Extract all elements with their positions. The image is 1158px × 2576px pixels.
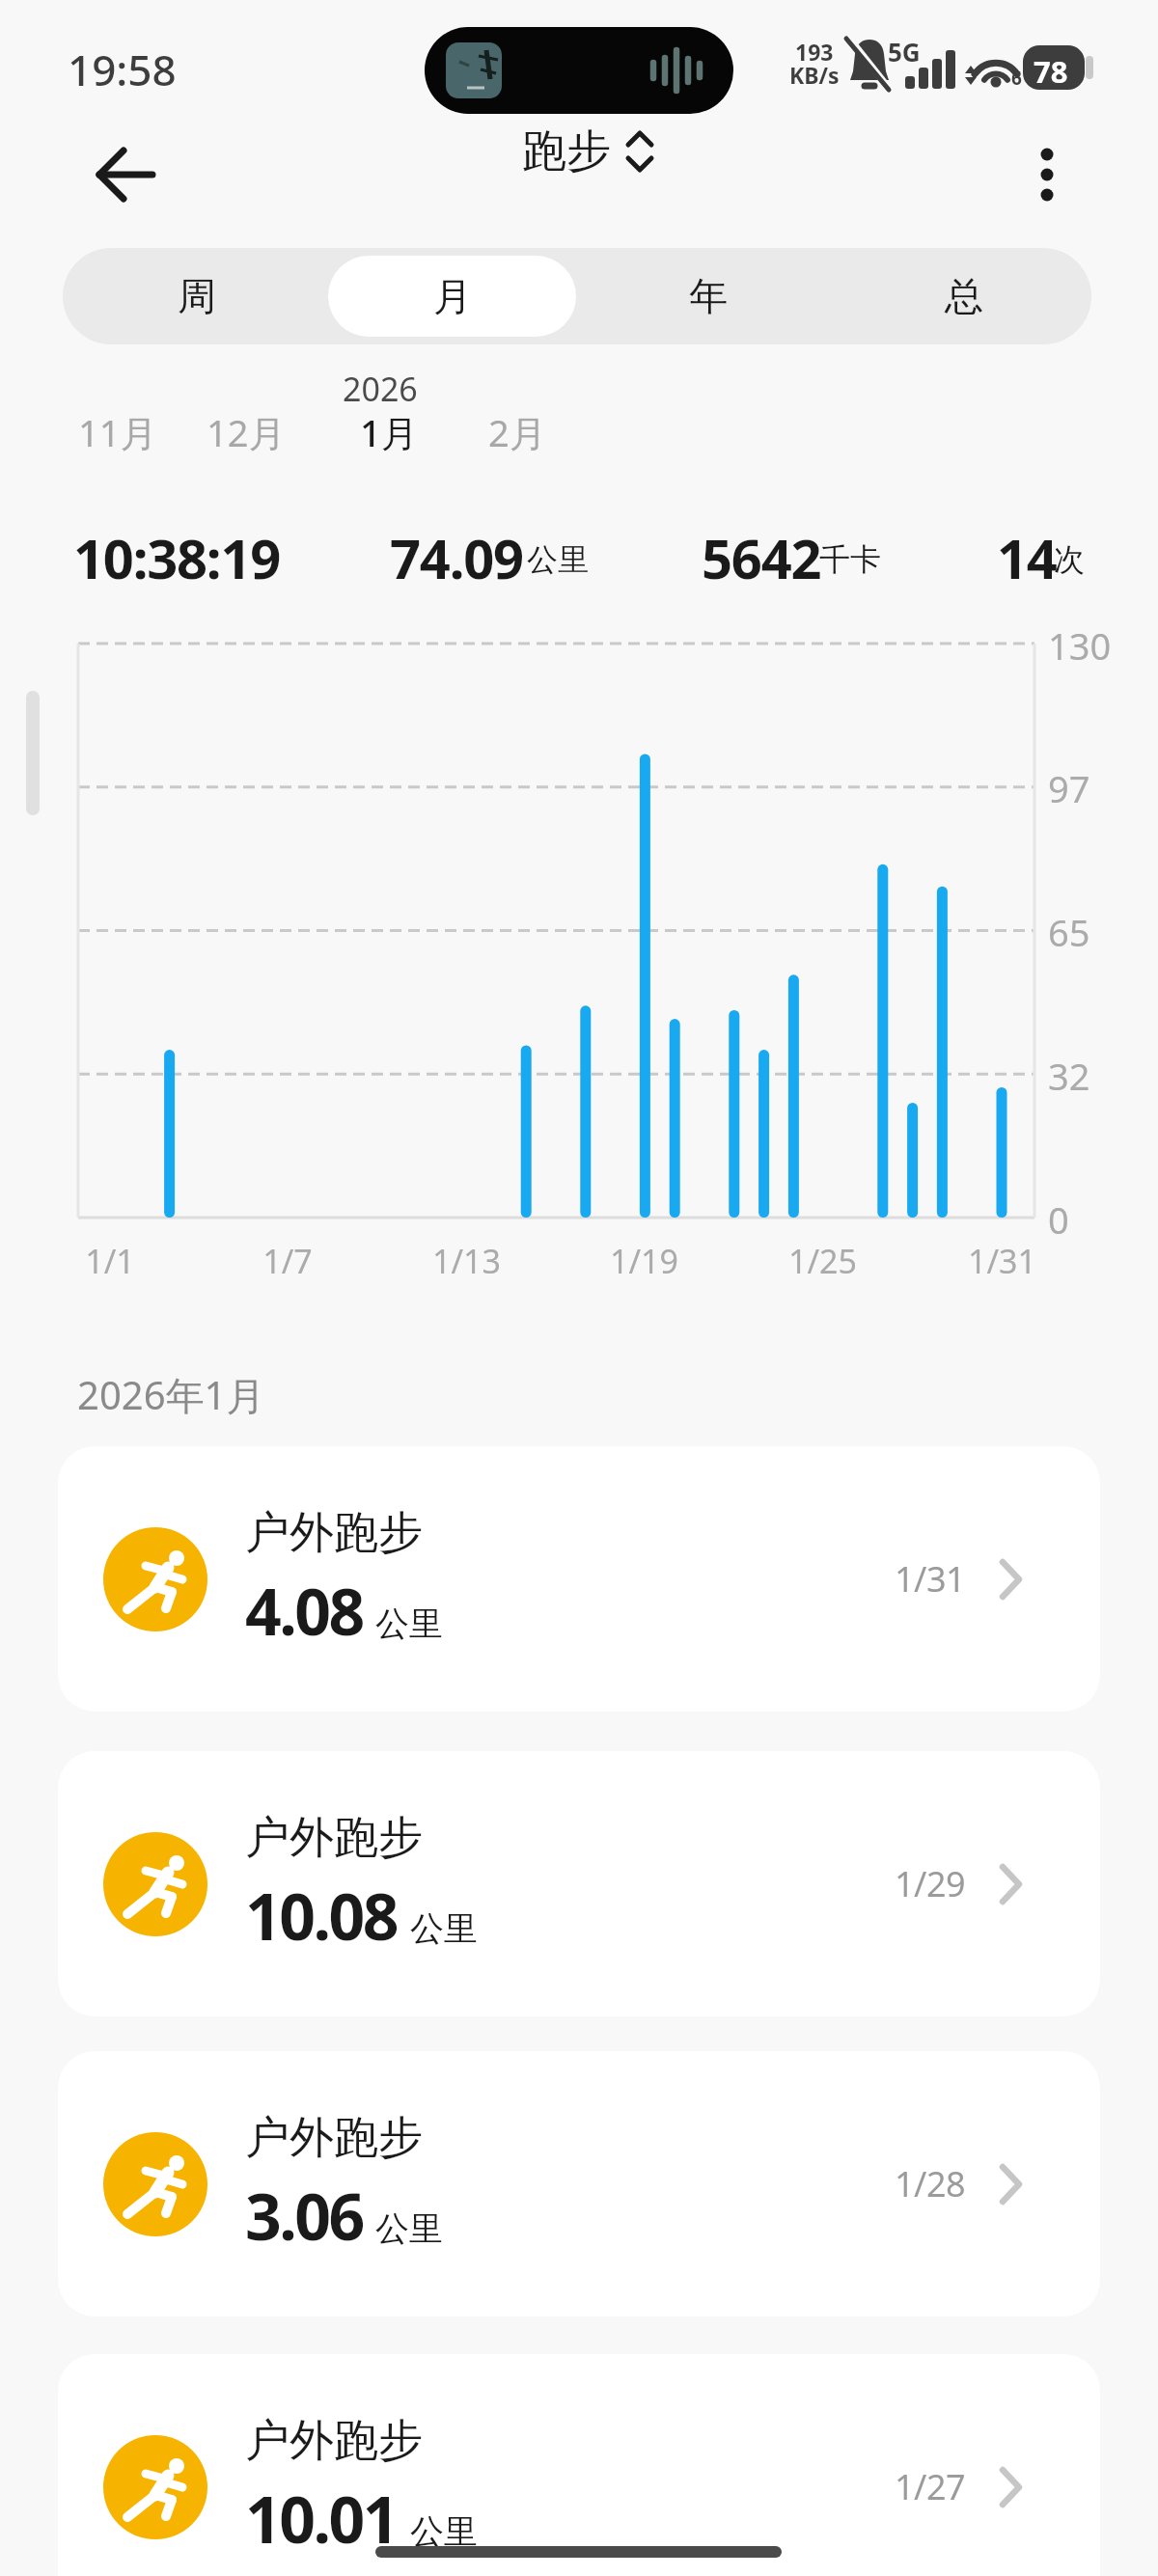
button[interactable]: 12月	[207, 407, 286, 457]
staticText: 2026	[343, 367, 418, 411]
staticText: 公里	[375, 2207, 443, 2250]
staticText: 1/29	[895, 1860, 966, 1907]
staticText: 公里	[375, 1603, 443, 1645]
button[interactable]: 总	[840, 256, 1088, 337]
button[interactable]	[1013, 135, 1081, 212]
button[interactable]: 1月	[360, 407, 418, 457]
staticText: 130	[1048, 620, 1112, 671]
button[interactable]: 周	[73, 256, 320, 337]
staticText: 12月	[207, 407, 286, 457]
staticText: 1/31	[895, 1555, 966, 1603]
staticText: 6	[1011, 66, 1022, 91]
button[interactable]: 户外跑步	[58, 2354, 1100, 2576]
staticText: 户外跑步	[245, 1810, 423, 1866]
staticText: 公里	[410, 1907, 478, 1950]
staticText: 公里	[410, 2510, 478, 2553]
staticText: 11月	[78, 407, 157, 457]
button[interactable]: 户外跑步	[58, 1751, 1100, 2016]
button[interactable]: 年	[584, 256, 832, 337]
staticText: 78	[1034, 51, 1068, 92]
staticText: 5G	[888, 35, 921, 69]
staticText: 1月	[360, 407, 418, 457]
staticText: 14	[997, 521, 1057, 594]
staticText: 193	[795, 37, 834, 67]
staticText: 97	[1048, 763, 1090, 813]
staticText: 74.09	[390, 521, 523, 594]
staticText: 1/1	[85, 1239, 135, 1283]
staticText: 户外跑步	[245, 1505, 423, 1561]
staticText: 32	[1048, 1051, 1090, 1101]
staticText: 1/27	[895, 2463, 966, 2510]
staticText: 总	[945, 272, 983, 320]
staticText: 1/31	[968, 1239, 1036, 1283]
staticText: 1/28	[895, 2160, 966, 2207]
staticText: 1/7	[262, 1239, 313, 1283]
staticText: 10:38:19	[73, 521, 281, 594]
staticText: 65	[1048, 907, 1090, 957]
staticText: 户外跑步	[245, 2413, 423, 2469]
staticText: 千卡	[819, 540, 881, 579]
staticText: KB/s	[789, 60, 840, 90]
staticText: 10.08	[245, 1872, 398, 1959]
button[interactable]: 月	[328, 256, 576, 337]
button[interactable]: 11月	[78, 407, 157, 457]
staticText: 5642	[702, 521, 821, 594]
staticText: 19:58	[68, 41, 177, 98]
button[interactable]	[77, 135, 174, 216]
staticText: 跑步	[522, 123, 611, 179]
staticText: 2月	[488, 407, 546, 457]
button[interactable]: 跑步	[522, 123, 655, 179]
button[interactable]: 户外跑步	[58, 1446, 1100, 1712]
staticText: 次	[1054, 540, 1085, 579]
button[interactable]: 2月	[488, 407, 546, 457]
staticText: 公里	[527, 540, 589, 579]
staticText: 户外跑步	[245, 2110, 423, 2166]
staticText: 年	[689, 272, 728, 320]
staticText: 2026年1月	[77, 1368, 265, 1421]
staticText: 1/25	[788, 1239, 857, 1283]
staticText: 0	[1048, 1194, 1069, 1245]
staticText: 10.01	[245, 2475, 398, 2562]
staticText: 4.08	[245, 1567, 363, 1654]
button[interactable]: 户外跑步	[58, 2051, 1100, 2316]
staticText: 周	[178, 272, 216, 320]
staticText: 月	[433, 272, 472, 320]
staticText: 1/13	[432, 1239, 501, 1283]
staticText: 1/19	[610, 1239, 678, 1283]
staticText: 3.06	[245, 2172, 363, 2259]
